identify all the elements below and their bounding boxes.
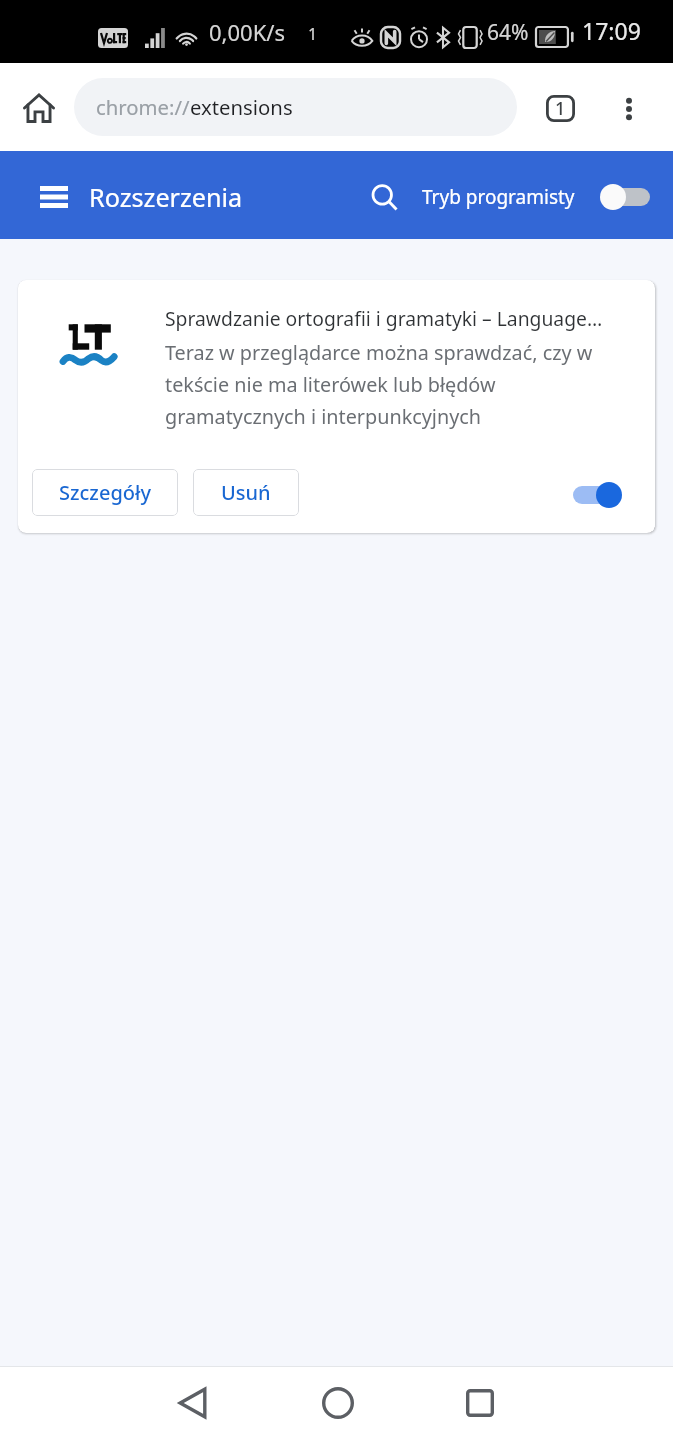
- button[interactable]: Recents: [407, 1367, 552, 1439]
- button[interactable]: Home: [11, 80, 66, 135]
- staticText: 0,00K/s: [209, 17, 285, 47]
- button[interactable]: Search: [361, 174, 409, 222]
- staticText: extensions: [190, 93, 293, 121]
- staticText: chrome://: [96, 93, 190, 121]
- staticText: 1: [308, 23, 318, 45]
- button[interactable]: Home: [265, 1367, 410, 1439]
- button[interactable]: Enable extension: [573, 482, 627, 512]
- button[interactable]: More options: [601, 81, 657, 137]
- staticText: Szczegóły: [59, 479, 151, 506]
- button[interactable]: Szczegóły: [32, 469, 178, 516]
- staticText: 64%: [487, 18, 529, 47]
- staticText: Teraz w przeglądarce można sprawdzać, cz…: [165, 339, 609, 430]
- staticText: 1: [555, 96, 566, 121]
- staticText: Usuń: [221, 479, 271, 506]
- staticText: Rozszerzenia: [89, 180, 243, 214]
- button[interactable]: chrome://: [74, 78, 517, 136]
- button[interactable]: Developer mode toggle: [598, 180, 656, 213]
- staticText: Tryb programisty: [422, 184, 575, 210]
- button[interactable]: Back: [120, 1367, 265, 1439]
- button[interactable]: Menu: [26, 174, 82, 220]
- staticText: 17:09: [582, 15, 641, 46]
- button[interactable]: Usuń: [193, 469, 299, 516]
- staticText: Sprawdzanie ortografii i gramatyki – Lan…: [165, 305, 603, 331]
- button[interactable]: Tabs: [532, 80, 588, 136]
